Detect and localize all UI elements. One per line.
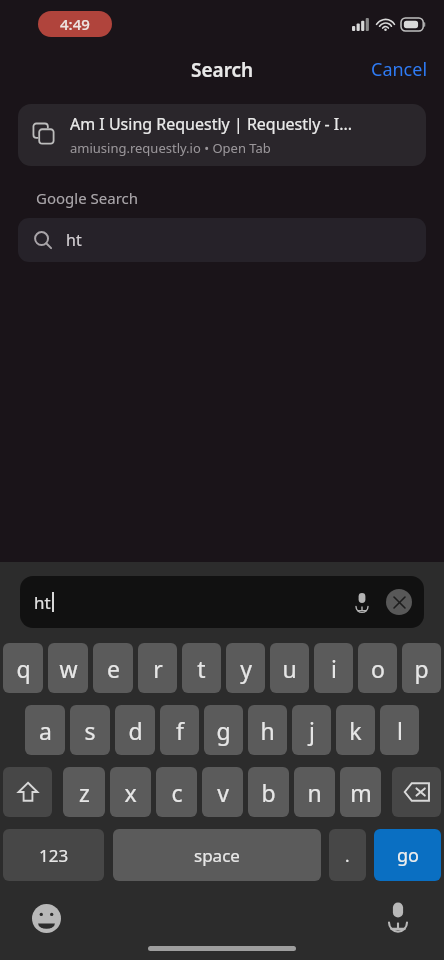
button[interactable]: z (63, 767, 105, 817)
button[interactable]: s (70, 705, 110, 755)
staticText: q (16, 653, 31, 684)
button[interactable]: c (156, 767, 197, 817)
button[interactable]: q (3, 643, 43, 693)
button[interactable]: p (402, 643, 441, 693)
button[interactable]: b (248, 767, 289, 817)
button[interactable]: i (314, 643, 353, 693)
staticText: p (414, 653, 429, 684)
staticText: z (79, 777, 90, 808)
button[interactable]: Backspace (392, 767, 441, 817)
staticText: r (153, 653, 163, 684)
staticText: v (217, 777, 229, 808)
button[interactable]: n (294, 767, 335, 817)
button[interactable]: x (110, 767, 151, 817)
button[interactable]: go (374, 829, 441, 881)
staticText: i (331, 653, 337, 684)
staticText: l (397, 715, 403, 746)
button[interactable]: Am I Using Requestly | Requestly - I... (18, 104, 426, 166)
button[interactable]: a (25, 705, 65, 755)
button[interactable]: Dictation (380, 898, 416, 934)
button[interactable]: Cancel (355, 49, 444, 90)
button[interactable]: o (358, 643, 397, 693)
staticText: . (345, 844, 350, 867)
staticText: f (176, 715, 184, 746)
staticText: m (350, 777, 372, 808)
button[interactable]: l (380, 705, 419, 755)
button[interactable]: Clear text (386, 589, 412, 615)
button[interactable]: j (292, 705, 331, 755)
button[interactable]: e (93, 643, 133, 693)
staticText: y (240, 653, 252, 684)
staticText: d (128, 715, 143, 746)
staticText: 123 (39, 844, 69, 867)
button[interactable]: u (270, 643, 309, 693)
staticText: o (371, 653, 385, 684)
staticText: k (349, 715, 362, 746)
button[interactable]: y (226, 643, 265, 693)
staticText: space (194, 844, 240, 867)
button[interactable]: k (336, 705, 375, 755)
button[interactable]: 123 (3, 829, 104, 881)
staticText: a (39, 715, 52, 746)
button[interactable]: f (160, 705, 199, 755)
staticText: Cancel (371, 57, 428, 82)
button[interactable]: Shift (3, 767, 52, 817)
staticText: s (84, 715, 96, 746)
staticText: e (107, 653, 120, 684)
staticText: u (282, 653, 297, 684)
button[interactable]: ht (20, 576, 424, 628)
staticText: Google Search (36, 188, 139, 208)
button[interactable]: d (115, 705, 155, 755)
button[interactable]: m (340, 767, 381, 817)
staticText: Search (191, 57, 254, 83)
staticText: w (59, 653, 78, 684)
staticText: b (261, 777, 276, 808)
button[interactable]: w (48, 643, 88, 693)
staticText: n (307, 777, 322, 808)
button[interactable]: ht (18, 218, 426, 262)
button[interactable]: space (113, 829, 321, 881)
staticText: Am I Using Requestly | Requestly - I... (70, 113, 353, 135)
button[interactable]: h (248, 705, 287, 755)
staticText: h (260, 715, 275, 746)
button[interactable]: v (202, 767, 243, 817)
staticText: x (124, 777, 137, 808)
button[interactable]: r (138, 643, 177, 693)
staticText: ht (34, 591, 51, 614)
button[interactable]: g (204, 705, 243, 755)
button[interactable]: t (182, 643, 221, 693)
staticText: t (197, 653, 206, 684)
button[interactable]: Voice input (346, 586, 378, 618)
staticText: g (216, 715, 231, 746)
staticText: go (397, 843, 419, 868)
staticText: amiusing.requestly.io • Open Tab (70, 139, 271, 157)
button[interactable]: Emoji (28, 900, 64, 936)
staticText: j (309, 715, 315, 746)
button[interactable]: . (329, 829, 366, 881)
staticText: c (171, 777, 183, 808)
staticText: 4:49 (60, 14, 90, 34)
staticText: ht (66, 229, 82, 251)
